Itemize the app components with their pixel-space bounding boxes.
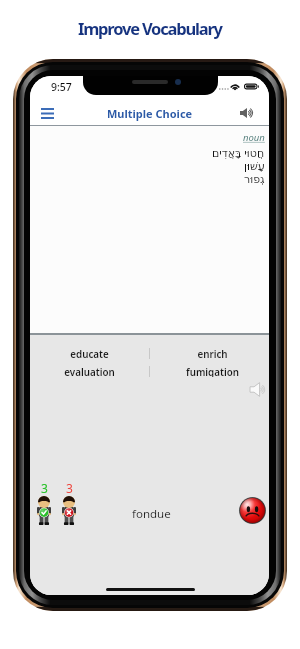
button[interactable]: educate [30,348,149,359]
button[interactable]: Wrong answer [235,493,269,527]
button[interactable]: Speak word [235,101,259,125]
staticText: חֲטוּי בָּאֲדִים [212,145,265,160]
staticText: גְפוּר [244,173,265,186]
staticText: enrich [197,348,228,359]
staticText: 3 [41,480,48,496]
button[interactable]: Open menu [35,101,59,125]
staticText: evaluation [64,366,115,377]
button[interactable]: fumigation [149,366,269,377]
button[interactable]: evaluation [30,366,149,377]
staticText: fumigation [186,366,239,377]
button[interactable]: Replay audio [248,379,268,399]
staticText: Improve Vocabulary [78,17,222,39]
staticText: noun [243,131,265,144]
staticText: educate [70,348,109,359]
staticText: fondue [132,506,171,522]
staticText: Multiple Choice [107,106,193,121]
staticText: 9:57 [51,80,72,94]
button[interactable]: enrich [149,348,269,359]
staticText: עָשׁוּן [244,160,265,173]
staticText: 3 [66,480,73,496]
